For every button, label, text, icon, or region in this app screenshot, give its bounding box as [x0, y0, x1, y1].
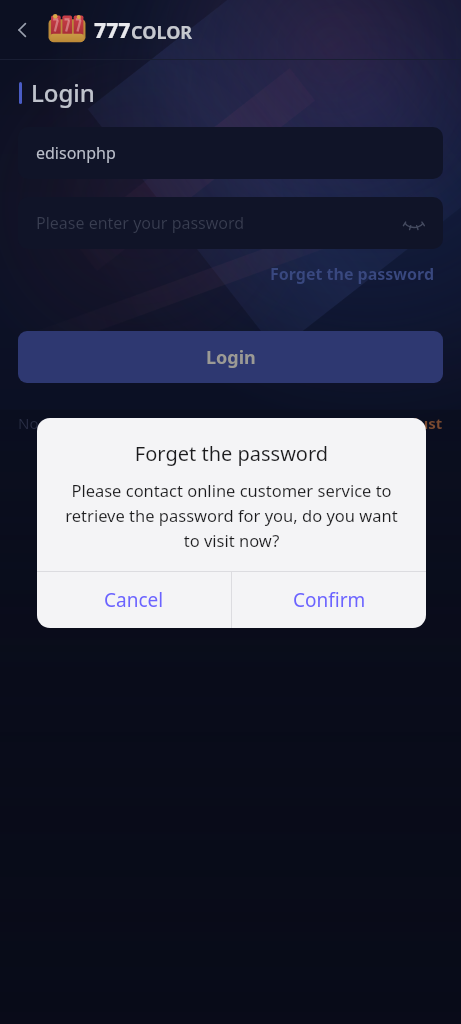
staticText: COLOR [131, 20, 193, 45]
button[interactable]: Cancel [37, 572, 231, 628]
staticText: Please enter your password [36, 212, 245, 234]
staticText: Confirm [293, 587, 366, 613]
staticText: Login [206, 345, 256, 370]
button[interactable]: Show password [397, 206, 431, 240]
staticText: Please contact online customer service t… [59, 479, 404, 551]
button[interactable]: Please enter your password [18, 197, 443, 249]
button[interactable]: Confirm [232, 572, 426, 628]
button[interactable]: Login [18, 331, 443, 383]
staticText: edisonphp [36, 142, 116, 164]
staticText: Forget the password [270, 263, 435, 285]
staticText: Forget the password [37, 440, 426, 467]
button[interactable]: Forget the password [266, 259, 439, 289]
button[interactable]: Register now just [312, 413, 443, 433]
button[interactable]: edisonphp [18, 127, 443, 179]
button[interactable]: Back [0, 7, 46, 53]
staticText: 777 [94, 16, 131, 45]
staticText: Login [31, 76, 95, 109]
staticText: No account? [18, 413, 105, 433]
staticText: Register now just [312, 413, 443, 433]
staticText: Cancel [104, 587, 164, 613]
